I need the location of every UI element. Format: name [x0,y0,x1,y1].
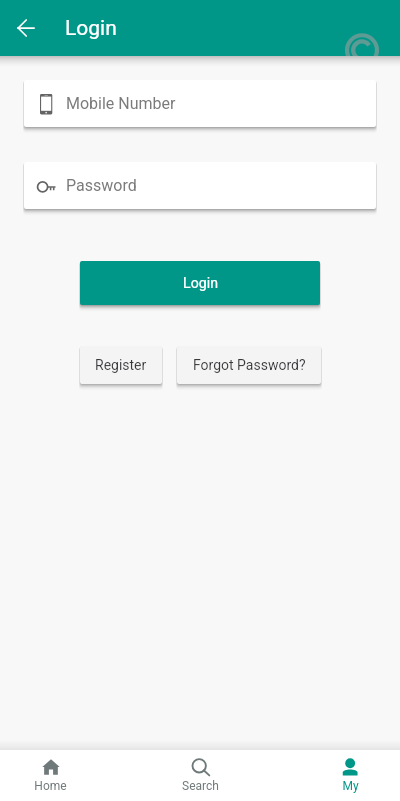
staticText: My [342,779,359,793]
staticText: Forgot Password? [193,357,306,373]
staticText: Login [65,16,117,41]
button[interactable]: Register [80,346,162,384]
button[interactable]: Search [150,750,250,801]
staticText: Login [183,275,218,292]
staticText: Search [182,779,219,793]
button[interactable]: Password [24,162,376,209]
button[interactable]: Mobile Number [24,80,376,127]
button[interactable]: Home [0,750,100,801]
staticText: Password [66,176,137,195]
staticText: Mobile Number [66,94,176,113]
button[interactable]: Back [6,8,46,48]
button[interactable]: My [300,750,400,801]
button[interactable]: Forgot Password? [177,346,321,384]
button[interactable]: Login [80,261,320,305]
staticText: Register [95,357,147,373]
staticText: Home [34,779,67,793]
